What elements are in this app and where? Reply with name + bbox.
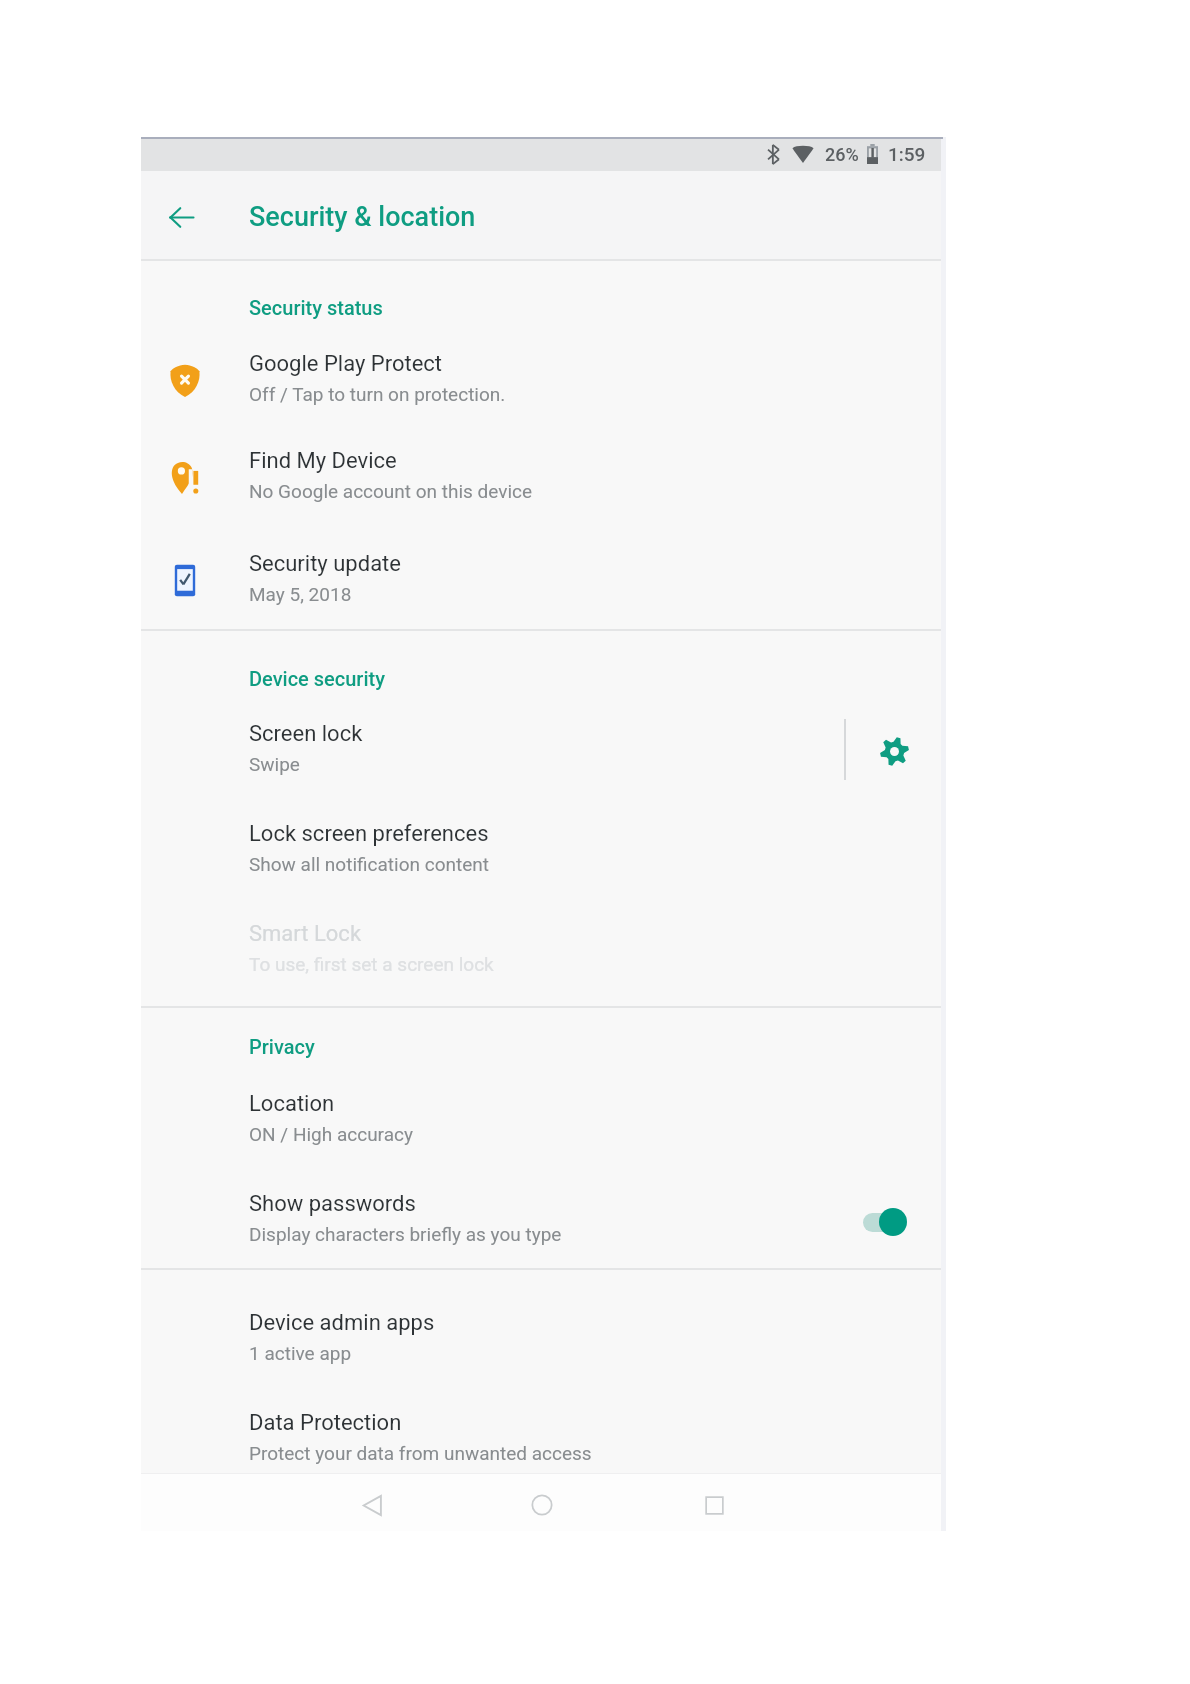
button[interactable]: Back (153, 189, 209, 245)
staticText: 1 active app (249, 1342, 352, 1364)
staticText: Show all notification content (249, 853, 489, 875)
staticText: Google Play Protect (249, 351, 443, 377)
staticText: 1:59 (888, 143, 926, 165)
button[interactable]: Location (141, 1078, 943, 1166)
button[interactable]: Home (512, 1473, 572, 1531)
button[interactable]: Show passwords toggle (863, 1178, 907, 1266)
staticText: Security update (249, 551, 401, 577)
button[interactable]: Security update (141, 538, 943, 626)
button[interactable]: Google Play Protect (141, 338, 943, 426)
staticText: Find My Device (249, 448, 397, 474)
button[interactable]: Back (342, 1473, 402, 1531)
staticText: No Google account on this device (249, 480, 533, 502)
staticText: Display characters briefly as you type (249, 1223, 562, 1245)
button[interactable]: Recents (684, 1473, 744, 1531)
staticText: Security status (249, 296, 383, 319)
staticText: Location (249, 1091, 335, 1117)
button[interactable]: Screen lock (141, 708, 943, 796)
staticText: 26% (825, 144, 859, 165)
staticText: Off / Tap to turn on protection. (249, 383, 506, 405)
staticText: Data Protection (249, 1410, 402, 1436)
button[interactable]: Lock screen preferences (141, 808, 943, 896)
staticText: ON / High accuracy (249, 1123, 413, 1145)
button[interactable]: Show passwords (141, 1178, 943, 1266)
button[interactable]: Find My Device (141, 435, 943, 523)
staticText: Screen lock (249, 721, 363, 747)
staticText: Protect your data from unwanted access (249, 1442, 592, 1464)
staticText: May 5, 2018 (249, 583, 352, 605)
staticText: Smart Lock (249, 921, 362, 947)
staticText: Lock screen preferences (249, 821, 489, 847)
staticText: Device admin apps (249, 1310, 435, 1336)
button[interactable]: Screen lock settings (853, 708, 935, 796)
staticText: Swipe (249, 753, 300, 775)
staticText: Show passwords (249, 1191, 416, 1217)
staticText: To use, first set a screen lock (249, 953, 494, 975)
staticText: Security & location (249, 201, 476, 233)
staticText: Device security (249, 667, 385, 690)
button[interactable]: Data Protection (141, 1397, 943, 1485)
staticText: Privacy (249, 1035, 315, 1058)
button[interactable]: Device admin apps (141, 1297, 943, 1385)
button[interactable]: Smart Lock (141, 908, 943, 996)
